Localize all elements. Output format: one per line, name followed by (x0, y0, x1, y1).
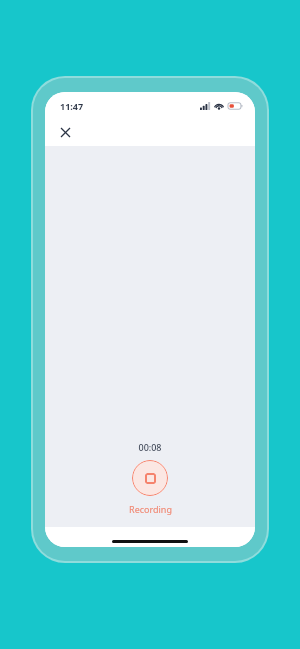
button[interactable]: Close (54, 121, 76, 143)
staticText: 11:47 (60, 100, 84, 112)
staticText: Recording (129, 503, 172, 515)
button[interactable]: Stop recording (132, 460, 168, 496)
staticText: 00:08 (138, 441, 162, 453)
